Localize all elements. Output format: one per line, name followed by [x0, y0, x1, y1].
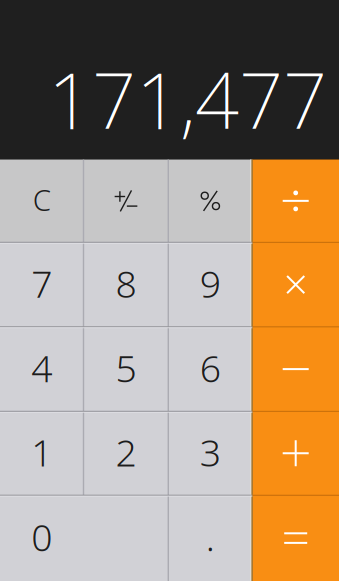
staticText: 4: [31, 343, 52, 393]
staticText: 5: [115, 343, 136, 393]
button[interactable]: Percent: [168, 159, 252, 242]
button[interactable]: Minus: [252, 327, 339, 411]
staticText: 3: [200, 427, 221, 477]
button[interactable]: 4: [0, 327, 83, 411]
button[interactable]: Equals: [252, 495, 339, 581]
staticText: 171,477: [48, 48, 327, 150]
button[interactable]: 9: [168, 242, 252, 327]
button[interactable]: 6: [168, 327, 252, 411]
button[interactable]: Plus or minus: [83, 159, 168, 242]
button[interactable]: 2: [83, 411, 168, 495]
staticText: 7: [31, 258, 52, 308]
button[interactable]: .: [168, 495, 252, 581]
button[interactable]: 1: [0, 411, 83, 495]
staticText: C: [33, 180, 51, 219]
staticText: 6: [200, 343, 221, 393]
staticText: 8: [115, 258, 136, 308]
button[interactable]: Divide: [252, 159, 339, 242]
button[interactable]: 5: [83, 327, 168, 411]
staticText: .: [206, 512, 215, 562]
button[interactable]: Multiply: [252, 242, 339, 327]
staticText: 1: [31, 427, 52, 477]
staticText: 0: [31, 512, 52, 562]
staticText: 9: [200, 258, 221, 308]
button[interactable]: 7: [0, 242, 83, 327]
button[interactable]: 0: [0, 495, 168, 581]
button[interactable]: C: [0, 159, 83, 242]
button[interactable]: Plus: [252, 411, 339, 495]
button[interactable]: 8: [83, 242, 168, 327]
staticText: 2: [115, 427, 136, 477]
button[interactable]: 3: [168, 411, 252, 495]
